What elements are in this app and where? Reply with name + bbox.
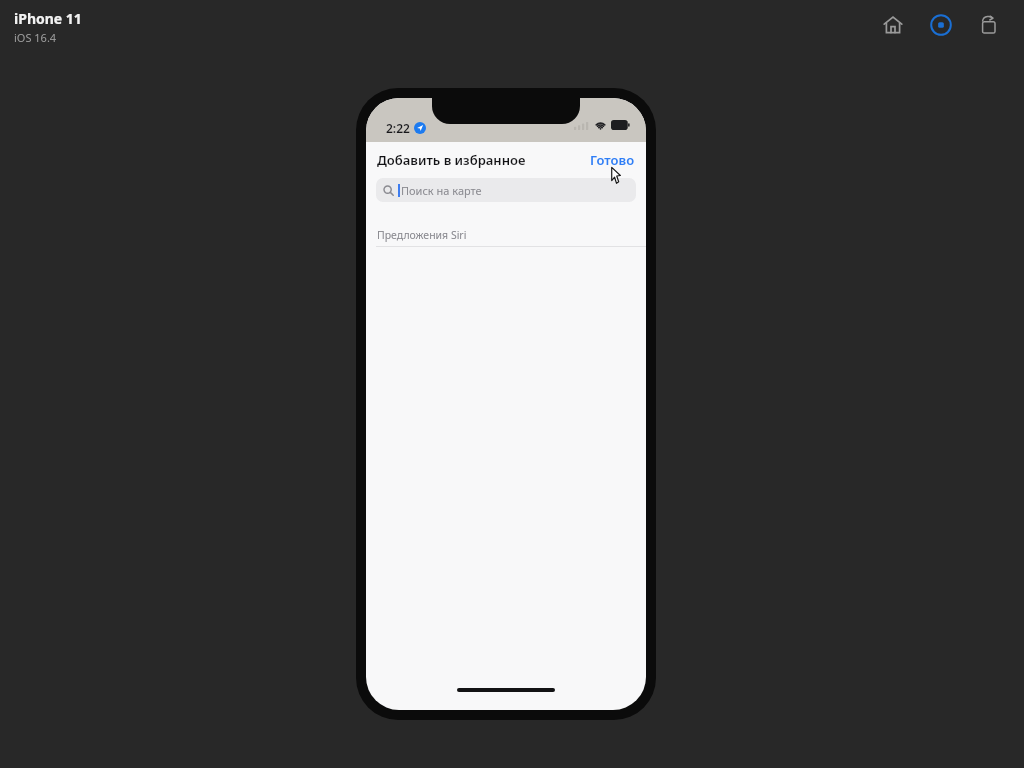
staticText: iPhone 11 <box>14 9 82 28</box>
button[interactable]: Готово <box>579 145 646 175</box>
button[interactable]: Home <box>878 10 908 40</box>
staticText: 2:22 <box>386 120 410 136</box>
staticText: Предложения Siri <box>377 228 467 242</box>
staticText: Готово <box>590 151 635 169</box>
staticText: Поиск на карте <box>401 183 482 198</box>
button[interactable]: Record screen <box>926 10 956 40</box>
staticText: iOS 16.4 <box>14 30 57 45</box>
button[interactable]: Поиск на карте <box>376 178 636 202</box>
button[interactable]: Rotate device <box>974 10 1004 40</box>
staticText: Добавить в избранное <box>377 151 526 169</box>
